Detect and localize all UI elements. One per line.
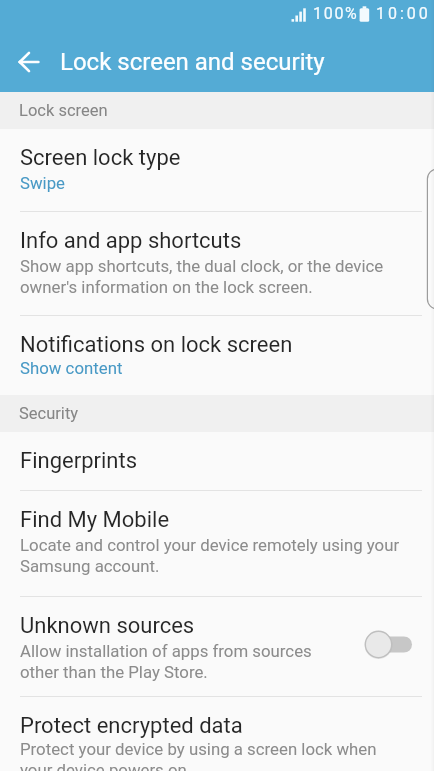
staticText: Unknown sources bbox=[20, 613, 195, 639]
staticText: Lock screen bbox=[19, 101, 108, 120]
staticText: Info and app shortcuts bbox=[20, 228, 242, 254]
staticText: Protect your device by using a screen lo… bbox=[20, 739, 377, 771]
staticText: Locate and control your device remotely … bbox=[20, 535, 400, 576]
button[interactable]: Info and app shortcuts bbox=[0, 212, 434, 316]
staticText: Protect encrypted data bbox=[20, 713, 243, 739]
staticText: Fingerprints bbox=[20, 448, 137, 474]
button[interactable]: Screen lock type bbox=[0, 129, 434, 212]
button[interactable]: Protect encrypted data bbox=[0, 697, 434, 771]
staticText: 100% bbox=[313, 4, 359, 23]
button[interactable] bbox=[8, 41, 50, 83]
staticText: Lock screen and security bbox=[60, 48, 325, 76]
staticText: Screen lock type bbox=[20, 145, 181, 171]
staticText: Security bbox=[19, 404, 79, 423]
staticText: Find My Mobile bbox=[20, 507, 170, 533]
staticText: Show content bbox=[20, 358, 123, 378]
button[interactable]: Notifications on lock screen bbox=[0, 316, 434, 395]
button[interactable]: Find My Mobile bbox=[0, 491, 434, 597]
staticText: Notifications on lock screen bbox=[20, 332, 293, 358]
button[interactable]: Fingerprints bbox=[0, 432, 434, 491]
staticText: 10:00 bbox=[376, 4, 431, 23]
staticText: Show app shortcuts, the dual clock, or t… bbox=[20, 256, 384, 297]
staticText: Allow installation of apps from sources … bbox=[20, 641, 312, 682]
staticText: Swipe bbox=[20, 173, 66, 193]
button[interactable]: Unknown sources bbox=[0, 597, 434, 697]
